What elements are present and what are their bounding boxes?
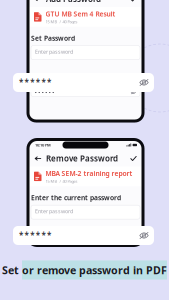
button[interactable]: Back [32, 153, 43, 164]
button[interactable]: Show password [139, 232, 149, 239]
staticText: or remove password in PDF [22, 263, 167, 277]
button[interactable]: Back [32, 0, 43, 4]
staticText: * [36, 230, 40, 241]
button[interactable]: Enter password [31, 205, 140, 219]
staticText: * [30, 230, 34, 241]
button[interactable]: MBA SEM-2 training report [28, 166, 143, 186]
staticText: * [25, 230, 29, 241]
staticText: * [41, 230, 45, 241]
staticText: 15 MB / 40 Pages [45, 19, 77, 24]
staticText: * [19, 77, 23, 88]
button[interactable]: Done [128, 153, 139, 164]
staticText: GTU MB Sem 4 Result [45, 9, 115, 18]
staticText: Set Password [31, 34, 75, 43]
staticText: Enter password [35, 48, 73, 55]
staticText: * [30, 77, 34, 88]
staticText: Add Password [46, 0, 101, 4]
button[interactable]: Done [128, 0, 139, 4]
staticText: * [41, 77, 45, 88]
staticText: Remove Password [46, 153, 118, 164]
staticText: Enter password [35, 208, 73, 215]
staticText: MBA SEM-2 training report [45, 169, 132, 178]
staticText: 15 MB / 40 Pages [45, 178, 77, 184]
staticText: Set [2, 263, 22, 277]
button[interactable]: Confirm password [31, 75, 140, 97]
button[interactable]: GTU MB Sem 4 Result [28, 7, 143, 27]
staticText: 10:10 PM [35, 142, 51, 148]
staticText: Confirm password [35, 77, 79, 84]
button[interactable]: Show password [139, 79, 149, 86]
staticText: * [25, 77, 29, 88]
staticText: * [47, 77, 51, 88]
staticText: * [36, 77, 40, 88]
button[interactable]: Enter password [31, 46, 140, 60]
staticText: Enter the current password [31, 193, 121, 202]
staticText: * [47, 230, 51, 241]
staticText: * [19, 230, 23, 241]
